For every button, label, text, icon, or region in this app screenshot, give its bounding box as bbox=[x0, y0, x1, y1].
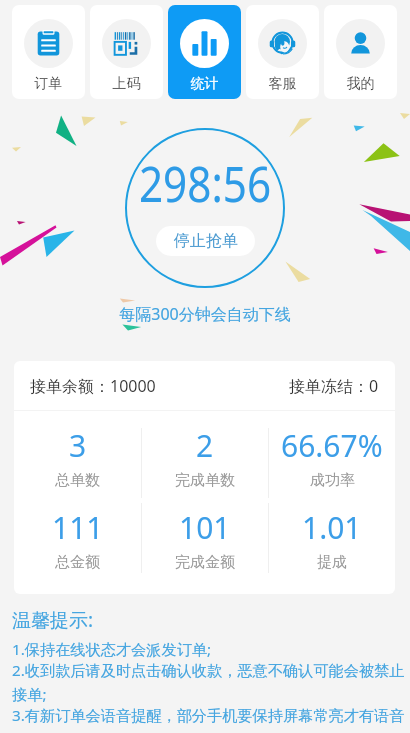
staticText: 停止抢单 bbox=[174, 231, 238, 251]
staticText: 订单 bbox=[12, 75, 85, 93]
staticText: 上码 bbox=[90, 75, 163, 93]
staticText: 3 bbox=[69, 425, 87, 466]
button[interactable]: 客服 bbox=[246, 5, 319, 99]
staticText: 成功率 bbox=[310, 471, 355, 490]
staticText: 提成 bbox=[317, 553, 347, 572]
button[interactable]: 统计 bbox=[168, 5, 241, 99]
staticText: 3.有新订单会语音提醒，部分手机要保持屏幕常亮才有语音 bbox=[12, 705, 405, 726]
staticText: 1.保持在线状态才会派发订单; bbox=[12, 639, 212, 660]
button[interactable]: 我的 bbox=[324, 5, 397, 99]
staticText: 总单数 bbox=[55, 471, 100, 490]
staticText: 温馨提示: bbox=[12, 607, 94, 633]
staticText: 我的 bbox=[324, 75, 397, 93]
staticText: 总金额 bbox=[55, 553, 100, 572]
staticText: 111 bbox=[52, 507, 104, 548]
staticText: 统计 bbox=[168, 75, 241, 93]
staticText: 2 bbox=[196, 425, 214, 466]
button[interactable]: 上码 bbox=[90, 5, 163, 99]
staticText: 完成单数 bbox=[175, 471, 235, 490]
staticText: 每隔300分钟会自动下线 bbox=[0, 303, 410, 325]
staticText: 完成金额 bbox=[175, 553, 235, 572]
staticText: 2.收到款后请及时点击确认收款，恶意不确认可能会被禁止接单; bbox=[12, 660, 409, 705]
staticText: 接单余额：10000 bbox=[30, 375, 156, 397]
staticText: 客服 bbox=[246, 75, 319, 93]
staticText: 1.01 bbox=[302, 507, 362, 548]
staticText: 101 bbox=[179, 507, 231, 548]
button[interactable]: 停止抢单 bbox=[156, 226, 255, 256]
staticText: 接单冻结：0 bbox=[289, 375, 379, 397]
button[interactable]: 订单 bbox=[12, 5, 85, 99]
staticText: 66.67% bbox=[281, 425, 383, 466]
staticText: 298:56 bbox=[32, 149, 378, 217]
